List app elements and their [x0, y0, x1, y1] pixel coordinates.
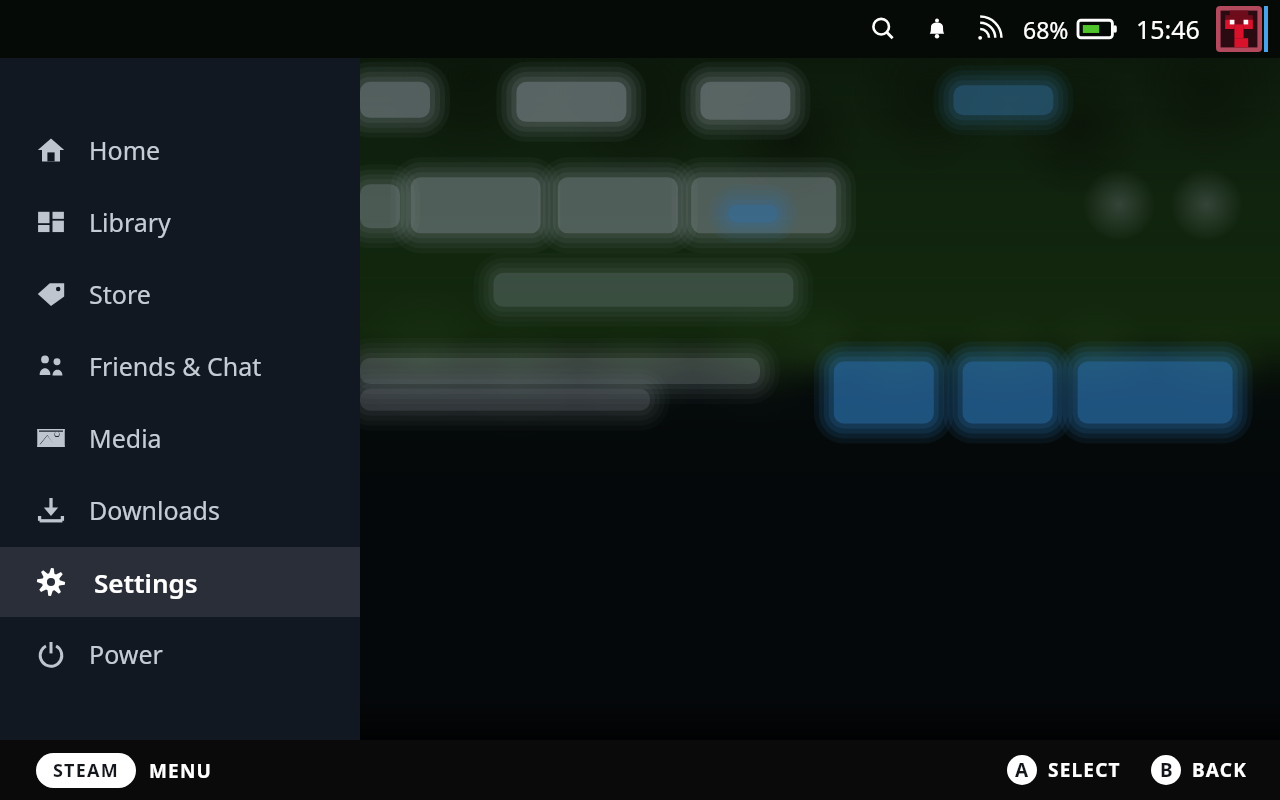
- staticText: Settings: [94, 565, 198, 600]
- button[interactable]: Search: [861, 7, 905, 51]
- button[interactable]: Network: [967, 7, 1011, 51]
- button[interactable]: Notifications: [915, 7, 959, 51]
- button[interactable]: STEAM: [36, 753, 136, 788]
- button[interactable]: B: [1151, 755, 1248, 785]
- button[interactable]: Downloads: [0, 475, 360, 545]
- staticText: SELECT: [1048, 757, 1121, 783]
- staticText: MENU: [149, 758, 213, 784]
- button[interactable]: A: [1007, 755, 1121, 785]
- button[interactable]: Friends & Chat: [0, 331, 360, 401]
- button[interactable]: Library: [0, 187, 360, 257]
- staticText: A: [1015, 757, 1029, 783]
- staticText: 68%: [1023, 14, 1069, 45]
- button[interactable]: Media: [0, 403, 360, 473]
- staticText: Library: [89, 205, 171, 239]
- staticText: Home: [89, 133, 161, 167]
- staticText: STEAM: [53, 758, 119, 783]
- staticText: Media: [89, 421, 162, 455]
- staticText: Power: [89, 637, 163, 671]
- staticText: BACK: [1192, 757, 1248, 783]
- button[interactable]: Store: [0, 259, 360, 329]
- staticText: Friends & Chat: [89, 349, 262, 383]
- button[interactable]: Power: [0, 619, 360, 689]
- staticText: Store: [89, 277, 151, 311]
- staticText: B: [1160, 757, 1173, 783]
- staticText: 15:46: [1136, 12, 1200, 46]
- staticText: Downloads: [89, 493, 220, 527]
- button[interactable]: Profile: [1216, 6, 1270, 52]
- button[interactable]: Home: [0, 115, 360, 185]
- button[interactable]: Settings: [0, 547, 360, 617]
